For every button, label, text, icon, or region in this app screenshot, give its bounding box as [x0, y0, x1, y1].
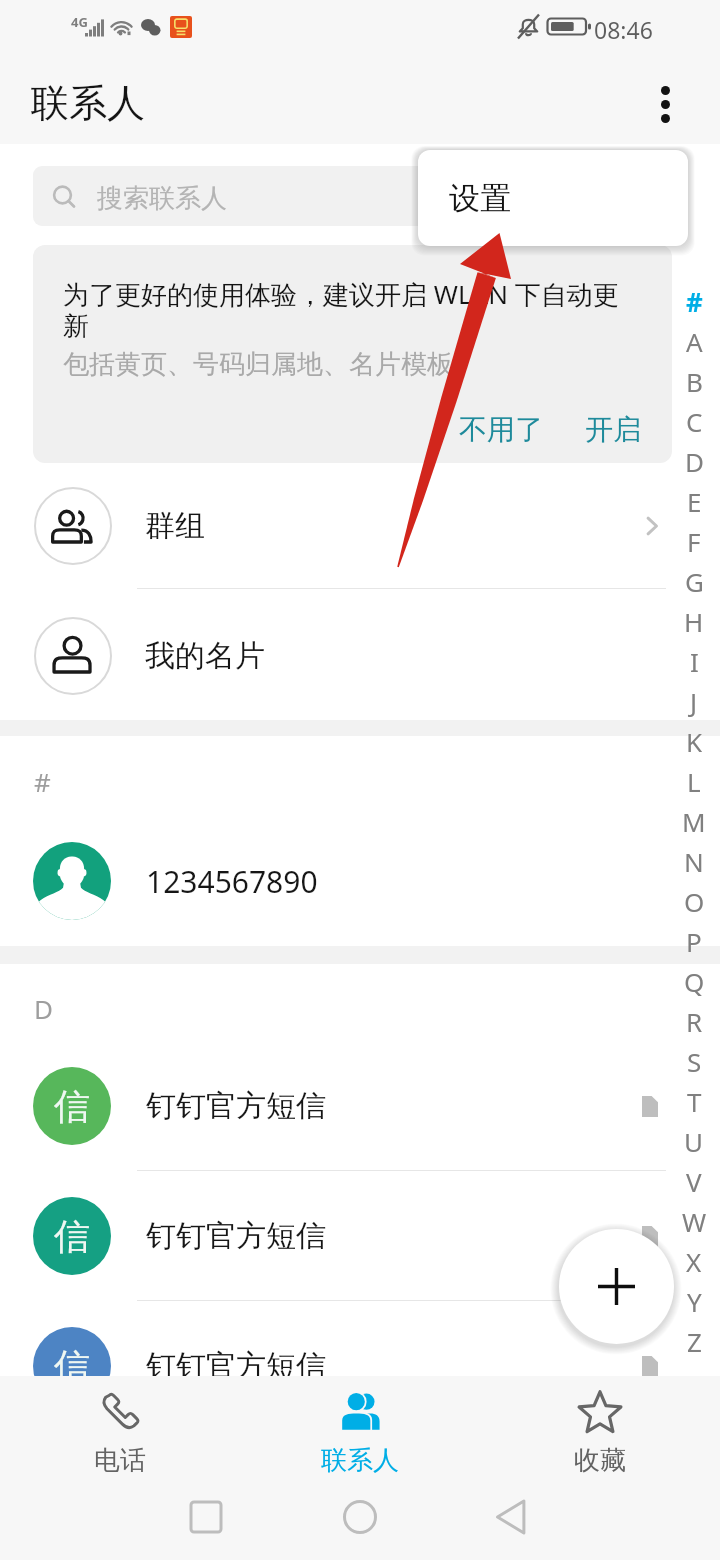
staticText: W [682, 1204, 707, 1239]
staticText: # [686, 284, 703, 319]
staticText: 1234567890 [146, 861, 658, 902]
button[interactable]: 信 [0, 1197, 720, 1275]
staticText: G [685, 564, 704, 599]
button[interactable]: Home [330, 1487, 390, 1547]
staticText: O [684, 884, 705, 919]
button[interactable]: 我的名片 [0, 592, 720, 720]
staticText: V [686, 1164, 702, 1199]
staticText: A [686, 324, 703, 359]
button[interactable]: Recents [176, 1487, 236, 1547]
button[interactable]: 搜索联系人 [33, 166, 687, 226]
staticText: T [687, 1084, 702, 1119]
staticText: 4G [71, 13, 88, 31]
button[interactable]: 收藏 [480, 1376, 720, 1478]
staticText: N [684, 844, 704, 879]
staticText: X [686, 1244, 702, 1279]
staticText: 开启 [585, 412, 641, 447]
button[interactable]: 电话 [0, 1376, 240, 1478]
button[interactable]: 信 [0, 1067, 720, 1145]
staticText: L [687, 764, 701, 799]
staticText: D [34, 991, 53, 1026]
staticText: 钉钉官方短信 [146, 1347, 642, 1385]
staticText: 为了更好的使用体验，建议开启 WLAN 下自动更 新 [63, 276, 619, 343]
button[interactable]: 不用了 [435, 393, 567, 463]
staticText: 联系人 [321, 1444, 399, 1477]
staticText: H [684, 604, 704, 639]
staticText: 设置 [449, 179, 511, 218]
staticText: 钉钉官方短信 [146, 1217, 642, 1255]
staticText: 不用了 [459, 412, 543, 447]
staticText: P [686, 924, 702, 959]
staticText: 我的名片 [145, 637, 666, 675]
staticText: C [686, 404, 703, 439]
button[interactable]: Back [481, 1487, 541, 1547]
staticText: 信 [54, 1214, 90, 1259]
button[interactable]: 群组 [0, 462, 720, 590]
button[interactable]: 开启 [561, 393, 665, 463]
staticText: 包括黄页、号码归属地、名片模板。 [63, 348, 479, 381]
button[interactable]: 设置 [418, 150, 688, 246]
staticText: 钉钉官方短信 [146, 1087, 642, 1125]
staticText: M [682, 804, 706, 839]
staticText: 信 [54, 1084, 90, 1129]
button[interactable]: Add contact [559, 1229, 674, 1344]
staticText: B [686, 364, 703, 399]
button[interactable]: 1234567890 [0, 842, 720, 920]
staticText: D [685, 444, 704, 479]
staticText: # [34, 764, 51, 799]
button[interactable]: 联系人 [240, 1376, 480, 1478]
staticText: 电话 [94, 1444, 146, 1477]
staticText: J [690, 684, 698, 719]
staticText: F [687, 524, 701, 559]
staticText: U [684, 1124, 704, 1159]
staticText: I [690, 644, 699, 679]
staticText: S [687, 1044, 702, 1079]
staticText: E [687, 484, 702, 519]
staticText: 群组 [145, 507, 638, 545]
staticText: Y [687, 1284, 702, 1319]
button[interactable]: More options [640, 79, 690, 129]
staticText: 搜索联系人 [97, 182, 227, 215]
staticText: 联系人 [31, 79, 145, 127]
staticText: Z [687, 1324, 702, 1359]
staticText: R [686, 1004, 703, 1039]
button[interactable]: 信 [0, 1327, 720, 1405]
staticText: K [686, 724, 703, 759]
staticText: Q [684, 964, 705, 999]
staticText: 信 [54, 1344, 90, 1389]
staticText: 收藏 [574, 1444, 626, 1477]
staticText: 08:46 [594, 14, 653, 45]
